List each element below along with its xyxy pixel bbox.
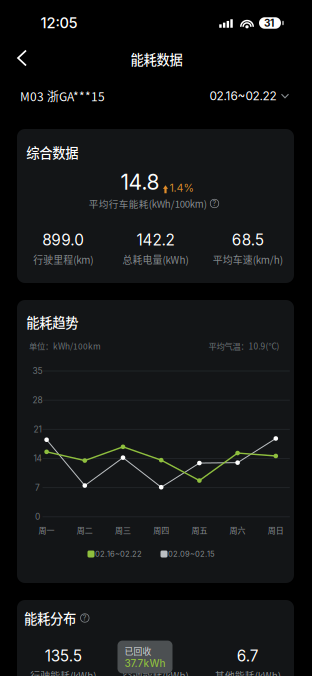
staticText: 周五	[191, 524, 207, 536]
button[interactable]: 02.16~02.22	[205, 80, 292, 112]
staticText: 135.5	[45, 647, 82, 665]
staticText: 单位：kWh/100km	[29, 340, 101, 352]
staticText: 平均气温：10.9(°C)	[208, 340, 279, 352]
staticText: 28	[32, 395, 42, 405]
staticText: 0	[35, 512, 40, 522]
staticText: 空调能耗(kWh)	[122, 668, 188, 676]
staticText: 14	[33, 453, 41, 464]
staticText: 总耗电量(kWh)	[122, 252, 188, 267]
staticText: 1.4%	[169, 181, 193, 194]
staticText: 其他能耗(kWh)	[215, 668, 281, 676]
staticText: 周三	[115, 524, 131, 536]
staticText: 02.09~02.15	[168, 549, 215, 559]
staticText: 21	[33, 424, 41, 434]
staticText: 02.16~02.22	[209, 89, 276, 103]
staticText: 已回收	[124, 645, 151, 657]
staticText: 平均车速(km/h)	[213, 252, 283, 267]
staticText: 能耗趋势	[26, 312, 78, 332]
staticText: 能耗分布	[24, 608, 76, 628]
staticText: 14.8	[120, 169, 159, 195]
staticText: ?	[212, 199, 216, 208]
button[interactable]: Back	[0, 38, 44, 78]
staticText: ?	[83, 614, 87, 622]
staticText: M03 浙GA***15	[20, 87, 105, 105]
staticText: 行驶能耗(kWh)	[30, 668, 96, 676]
staticText: 周二	[77, 524, 93, 536]
staticText: 68.5	[232, 231, 264, 249]
staticText: 35	[32, 366, 42, 376]
staticText: 行驶里程(km)	[33, 252, 93, 267]
staticText: 周六	[230, 524, 246, 536]
staticText: 平均行车能耗(kWh/100km)	[89, 196, 207, 210]
staticText: 31	[264, 17, 274, 29]
staticText: 周四	[153, 524, 169, 536]
staticText: 能耗数据	[130, 49, 182, 69]
staticText: 7	[35, 483, 40, 493]
staticText: 综合数据	[26, 143, 78, 162]
staticText: 142.2	[136, 231, 174, 249]
staticText: 12:05	[40, 14, 77, 32]
staticText: 899.0	[42, 231, 84, 249]
staticText: 周一	[39, 524, 55, 536]
staticText: 6.7	[237, 647, 259, 665]
staticText: 37.7kWh	[124, 657, 165, 669]
staticText: 02.16~02.22	[95, 549, 142, 559]
staticText: 周日	[268, 524, 284, 536]
staticText: 47.5	[140, 647, 170, 665]
